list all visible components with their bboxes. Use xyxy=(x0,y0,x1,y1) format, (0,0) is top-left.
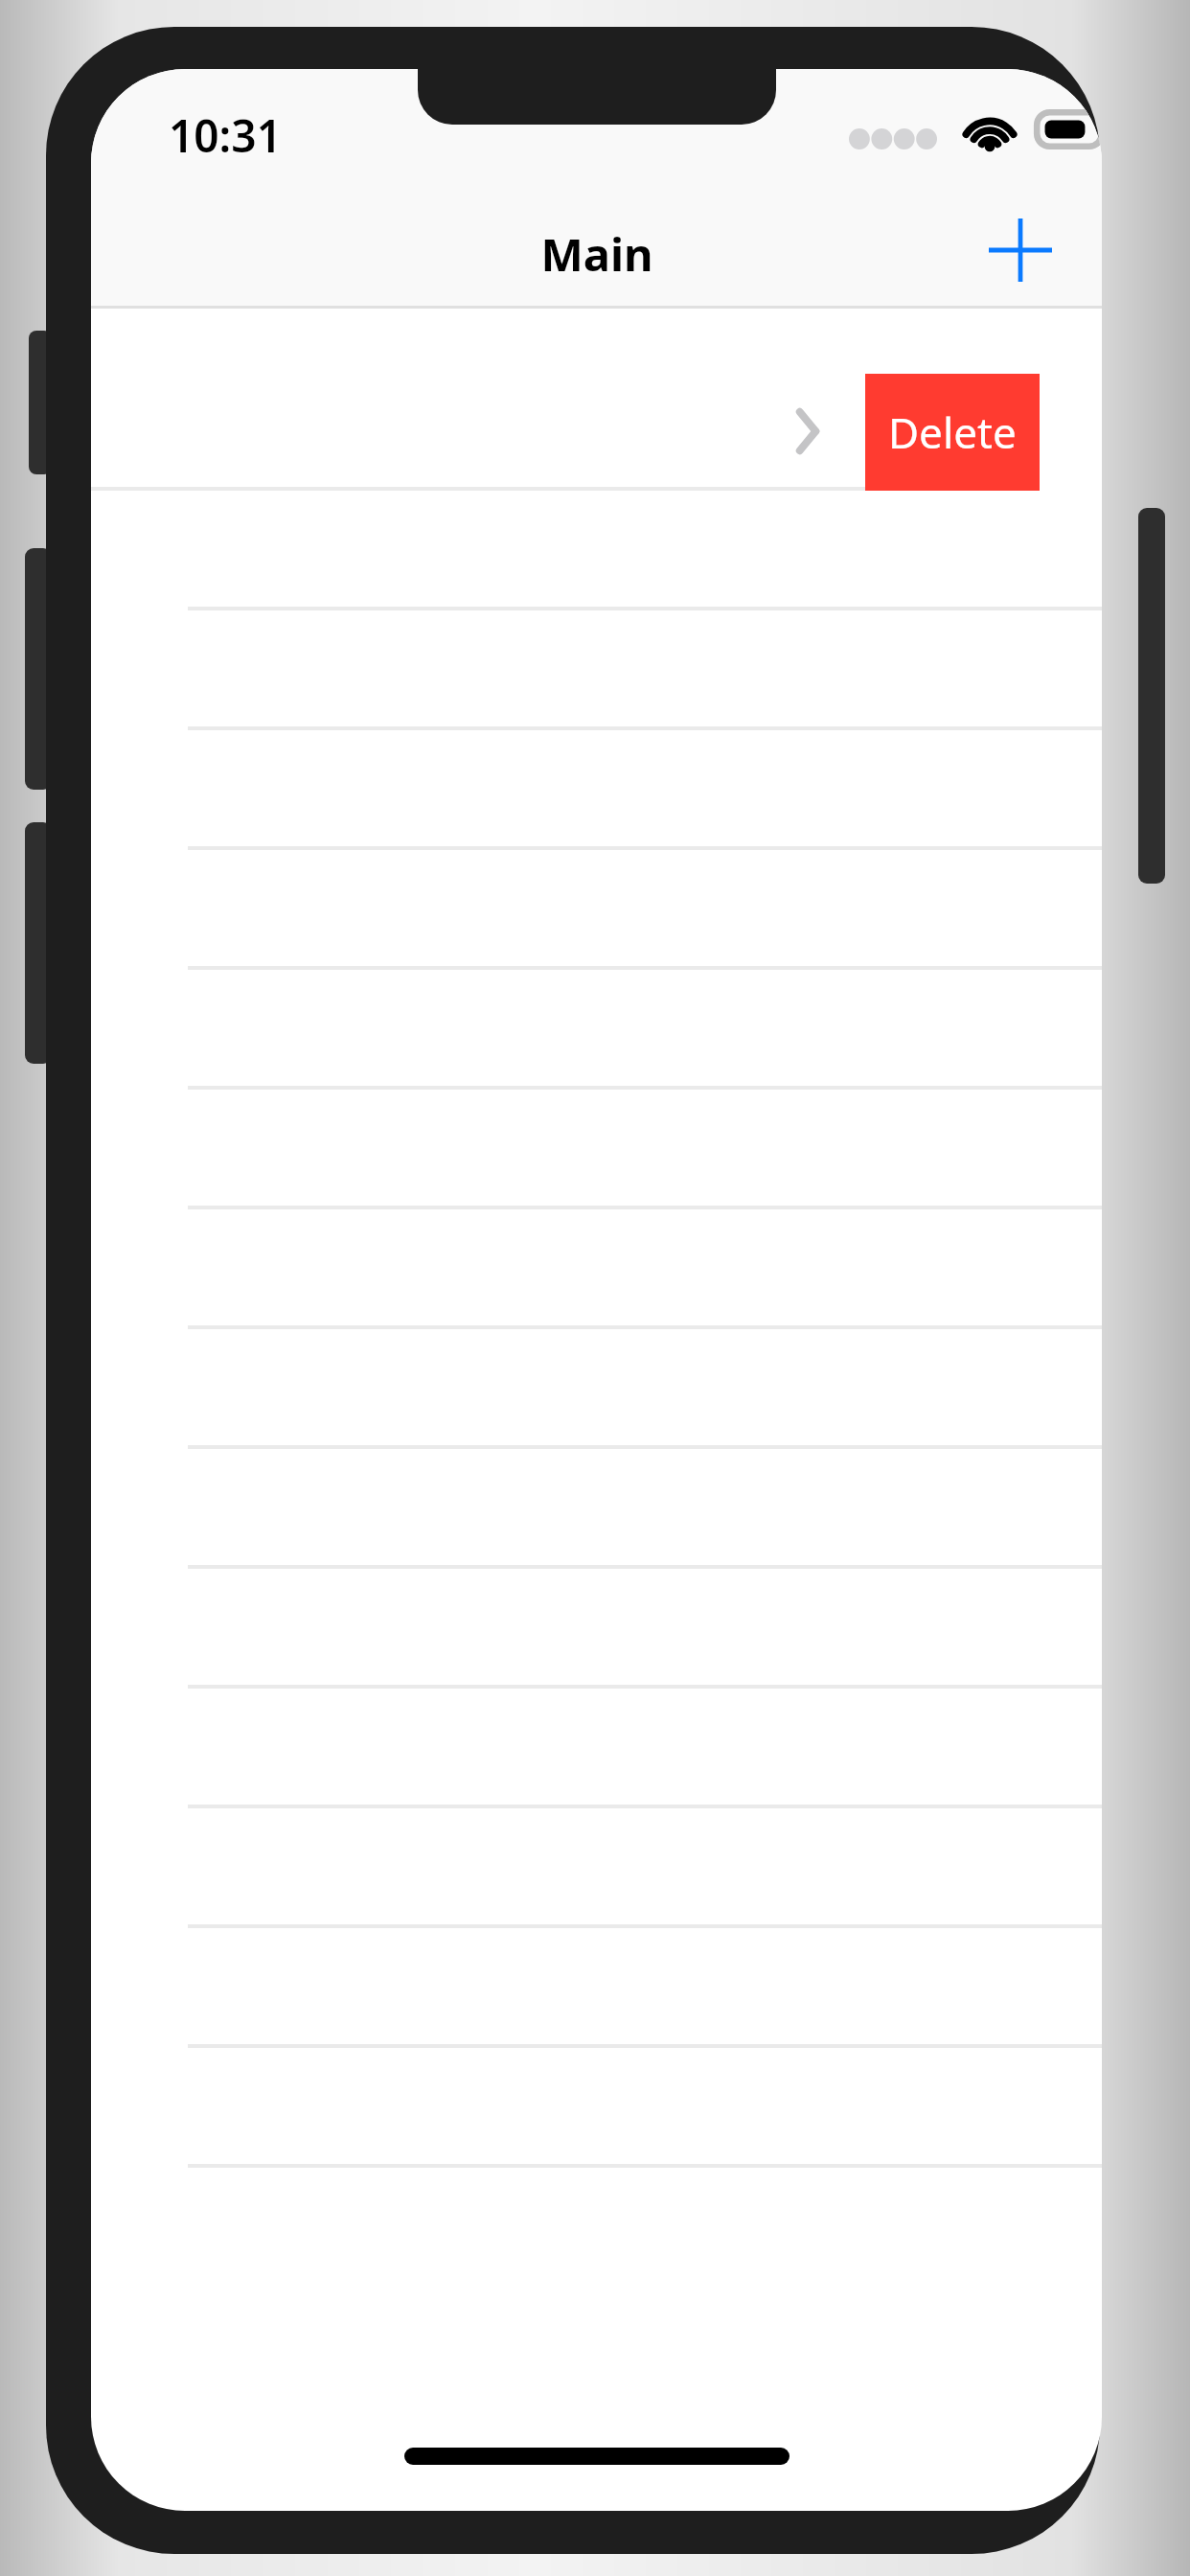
staticText: Delete xyxy=(888,403,1017,461)
staticText: 10:31 xyxy=(169,105,282,166)
button[interactable] xyxy=(91,1325,1102,1445)
button[interactable] xyxy=(91,846,1102,966)
button[interactable]: Delete xyxy=(865,374,1040,491)
button[interactable] xyxy=(91,1924,1102,2044)
button[interactable] xyxy=(91,487,1102,607)
button[interactable] xyxy=(91,1445,1102,1565)
button[interactable] xyxy=(91,966,1102,1086)
button[interactable] xyxy=(91,726,1102,846)
button[interactable] xyxy=(91,1206,1102,1325)
button[interactable] xyxy=(91,374,862,491)
button[interactable] xyxy=(91,1565,1102,1685)
button[interactable] xyxy=(91,607,1102,726)
button[interactable]: Add xyxy=(966,195,1075,305)
button[interactable] xyxy=(91,2044,1102,2164)
button[interactable] xyxy=(91,1086,1102,1206)
staticText: Main xyxy=(540,223,653,285)
button[interactable] xyxy=(91,1805,1102,1924)
button[interactable] xyxy=(91,1685,1102,1805)
